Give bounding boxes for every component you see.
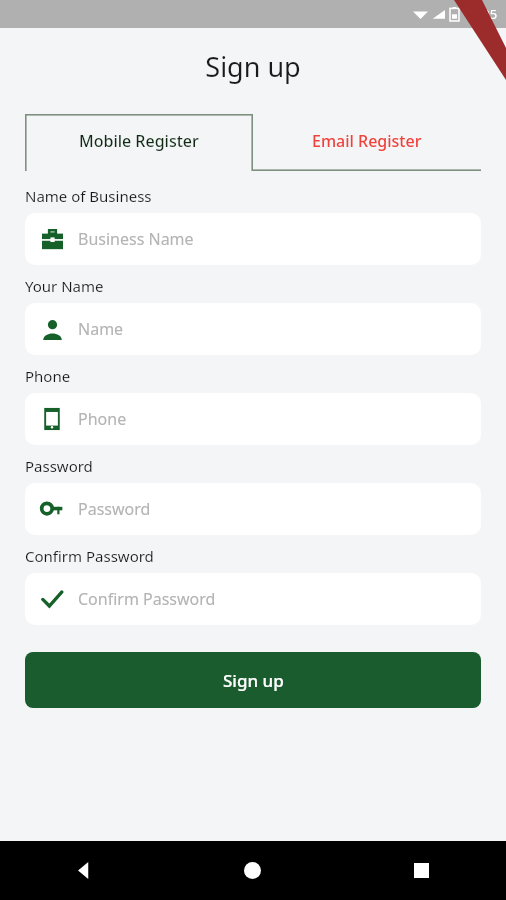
button[interactable]: Recent apps bbox=[337, 841, 506, 900]
button[interactable]: Business Name bbox=[25, 213, 481, 265]
button[interactable]: Name bbox=[25, 303, 481, 355]
staticText: Phone bbox=[25, 366, 71, 386]
staticText: 10:05 bbox=[464, 5, 498, 23]
staticText: Name of Business bbox=[25, 186, 152, 206]
button[interactable]: Confirm Password bbox=[25, 573, 481, 625]
staticText: Your Name bbox=[25, 276, 104, 296]
staticText: Confirm Password bbox=[25, 546, 154, 566]
staticText: Sign up bbox=[223, 669, 284, 692]
button[interactable]: Sign up bbox=[25, 652, 481, 708]
button[interactable]: Home bbox=[168, 841, 337, 900]
staticText: Sign up bbox=[0, 48, 506, 85]
button[interactable]: Back bbox=[0, 841, 168, 900]
staticText: Mobile Register bbox=[79, 130, 199, 152]
staticText: Business Name bbox=[78, 228, 194, 250]
staticText: Confirm Password bbox=[78, 588, 216, 610]
staticText: Phone bbox=[78, 408, 127, 430]
staticText: Name bbox=[78, 318, 124, 340]
button[interactable]: Password bbox=[25, 483, 481, 535]
button[interactable]: Mobile Register bbox=[25, 111, 253, 171]
button[interactable]: Phone bbox=[25, 393, 481, 445]
staticText: Password bbox=[25, 456, 93, 476]
staticText: Email Register bbox=[312, 130, 422, 152]
staticText: Password bbox=[78, 498, 151, 520]
button[interactable]: Email Register bbox=[253, 111, 481, 171]
